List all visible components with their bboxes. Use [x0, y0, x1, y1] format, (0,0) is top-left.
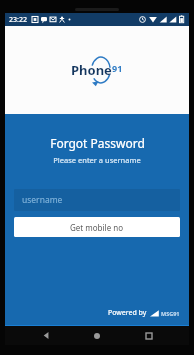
staticText: Phone — [71, 61, 112, 79]
button[interactable]: username — [14, 189, 180, 211]
staticText: username — [22, 194, 63, 206]
staticText: Forgot Password — [50, 135, 145, 151]
staticText: MSG91 — [161, 310, 180, 317]
button[interactable]: Get mobile no — [14, 217, 180, 237]
staticText: Please enter a username — [53, 155, 141, 165]
button[interactable]: Recent apps — [138, 326, 160, 345]
staticText: Powered by — [108, 308, 147, 318]
button[interactable]: Back — [35, 326, 57, 345]
button[interactable]: Powered by — [108, 308, 180, 318]
staticText: 23:22 — [9, 15, 27, 25]
staticText: Get mobile no — [70, 222, 124, 233]
other: MSG91 — [150, 310, 159, 317]
staticText: 91 — [112, 62, 123, 74]
button[interactable]: Home — [86, 326, 108, 345]
